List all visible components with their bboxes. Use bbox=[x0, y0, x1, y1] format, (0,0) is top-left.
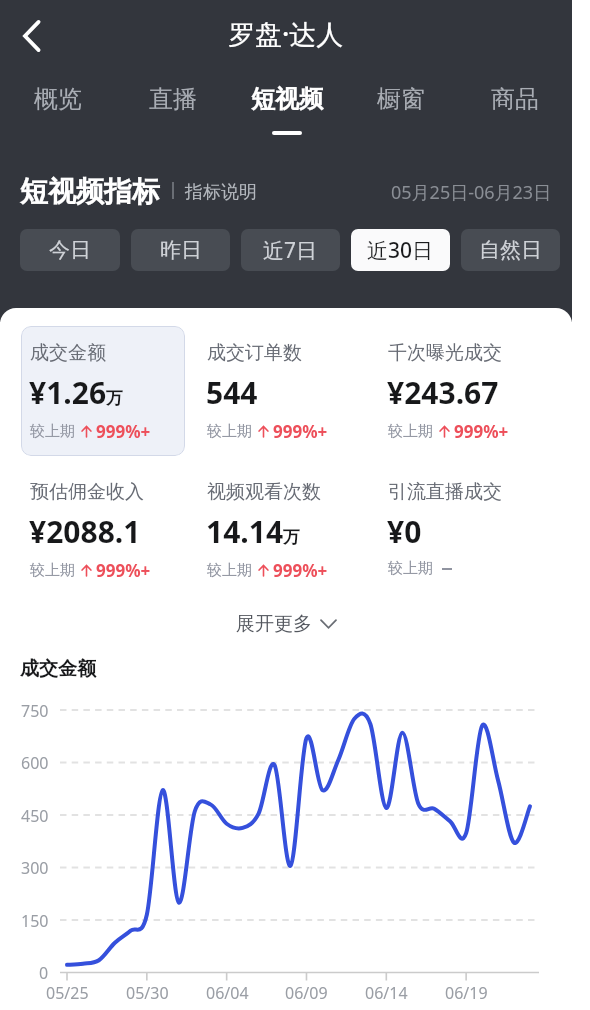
staticText: 成交金额 bbox=[30, 341, 106, 365]
staticText: 引流直播成交 bbox=[388, 480, 502, 504]
button[interactable]: 短视频 bbox=[230, 84, 344, 136]
staticText: 商品 bbox=[491, 84, 539, 114]
staticText: ¥0 bbox=[387, 511, 422, 552]
staticText: 999%+ bbox=[273, 420, 328, 443]
staticText: 999%+ bbox=[96, 559, 151, 582]
button[interactable]: Back bbox=[4, 8, 60, 64]
staticText: 150 bbox=[21, 910, 49, 932]
button[interactable]: 指标说明 bbox=[185, 181, 257, 204]
staticText: 06/19 bbox=[445, 982, 488, 1004]
button[interactable]: 商品 bbox=[458, 84, 572, 136]
staticText: ¥243.67 bbox=[387, 372, 499, 413]
button[interactable]: 昨日 bbox=[131, 229, 230, 271]
staticText: 近30日 bbox=[367, 236, 434, 265]
staticText: 预估佣金收入 bbox=[30, 480, 144, 504]
button[interactable]: 橱窗 bbox=[344, 84, 458, 136]
staticText: 短视频 bbox=[251, 84, 323, 114]
staticText: 06/14 bbox=[365, 982, 408, 1004]
button[interactable]: 近7日 bbox=[241, 229, 340, 271]
staticText: 450 bbox=[21, 805, 49, 827]
staticText: 成交订单数 bbox=[207, 341, 302, 365]
button[interactable]: 千次曝光成交 bbox=[379, 326, 559, 456]
staticText: 千次曝光成交 bbox=[388, 341, 502, 365]
staticText: 05月25日-06月23日 bbox=[391, 180, 552, 205]
staticText: 直播 bbox=[149, 84, 197, 114]
staticText: 橱窗 bbox=[377, 84, 425, 114]
staticText: 较上期 bbox=[30, 561, 75, 580]
button[interactable]: 概览 bbox=[0, 84, 115, 136]
button[interactable]: 引流直播成交 bbox=[379, 465, 559, 595]
button[interactable]: 今日 bbox=[20, 229, 120, 271]
staticText: 展开更多 bbox=[236, 612, 312, 636]
staticText: 较上期 bbox=[207, 561, 252, 580]
staticText: 600 bbox=[21, 752, 49, 774]
staticText: 999%+ bbox=[96, 420, 151, 443]
staticText: 近7日 bbox=[263, 236, 318, 265]
staticText: 999%+ bbox=[454, 420, 509, 443]
staticText: 短视频指标 bbox=[20, 174, 160, 209]
button[interactable]: 成交订单数 bbox=[198, 326, 378, 456]
staticText: 今日 bbox=[49, 237, 91, 263]
staticText: 06/09 bbox=[285, 982, 328, 1004]
staticText: 较上期 bbox=[388, 559, 433, 578]
staticText: 较上期 bbox=[388, 422, 433, 441]
staticText: 罗盘·达人 bbox=[228, 15, 344, 52]
button[interactable]: 直播 bbox=[115, 84, 230, 136]
staticText: 05/25 bbox=[46, 982, 89, 1004]
button[interactable]: 预估佣金收入 bbox=[21, 465, 185, 595]
staticText: 05/30 bbox=[126, 982, 169, 1004]
staticText: 999%+ bbox=[273, 559, 328, 582]
staticText: 0 bbox=[39, 962, 49, 984]
staticText: 较上期 bbox=[30, 422, 75, 441]
staticText: 750 bbox=[21, 700, 49, 722]
button[interactable]: 近30日 bbox=[351, 229, 450, 271]
staticText: 视频观看次数 bbox=[207, 480, 321, 504]
staticText: 较上期 bbox=[207, 422, 252, 441]
staticText: 300 bbox=[21, 857, 49, 879]
staticText: 昨日 bbox=[160, 237, 202, 263]
button[interactable]: 展开更多 bbox=[0, 608, 572, 640]
button[interactable]: 成交金额 bbox=[21, 326, 185, 456]
staticText: 成交金额 bbox=[20, 657, 96, 681]
button[interactable]: 视频观看次数 bbox=[198, 465, 378, 595]
staticText: ¥2088.1 bbox=[29, 511, 141, 552]
staticText: 544 bbox=[206, 372, 258, 413]
staticText: 14.14万 bbox=[206, 511, 301, 552]
staticText: 自然日 bbox=[479, 237, 542, 263]
staticText: ¥1.26万 bbox=[29, 372, 124, 413]
staticText: 06/04 bbox=[206, 982, 249, 1004]
staticText: 概览 bbox=[34, 84, 82, 114]
button[interactable]: 自然日 bbox=[461, 229, 560, 271]
